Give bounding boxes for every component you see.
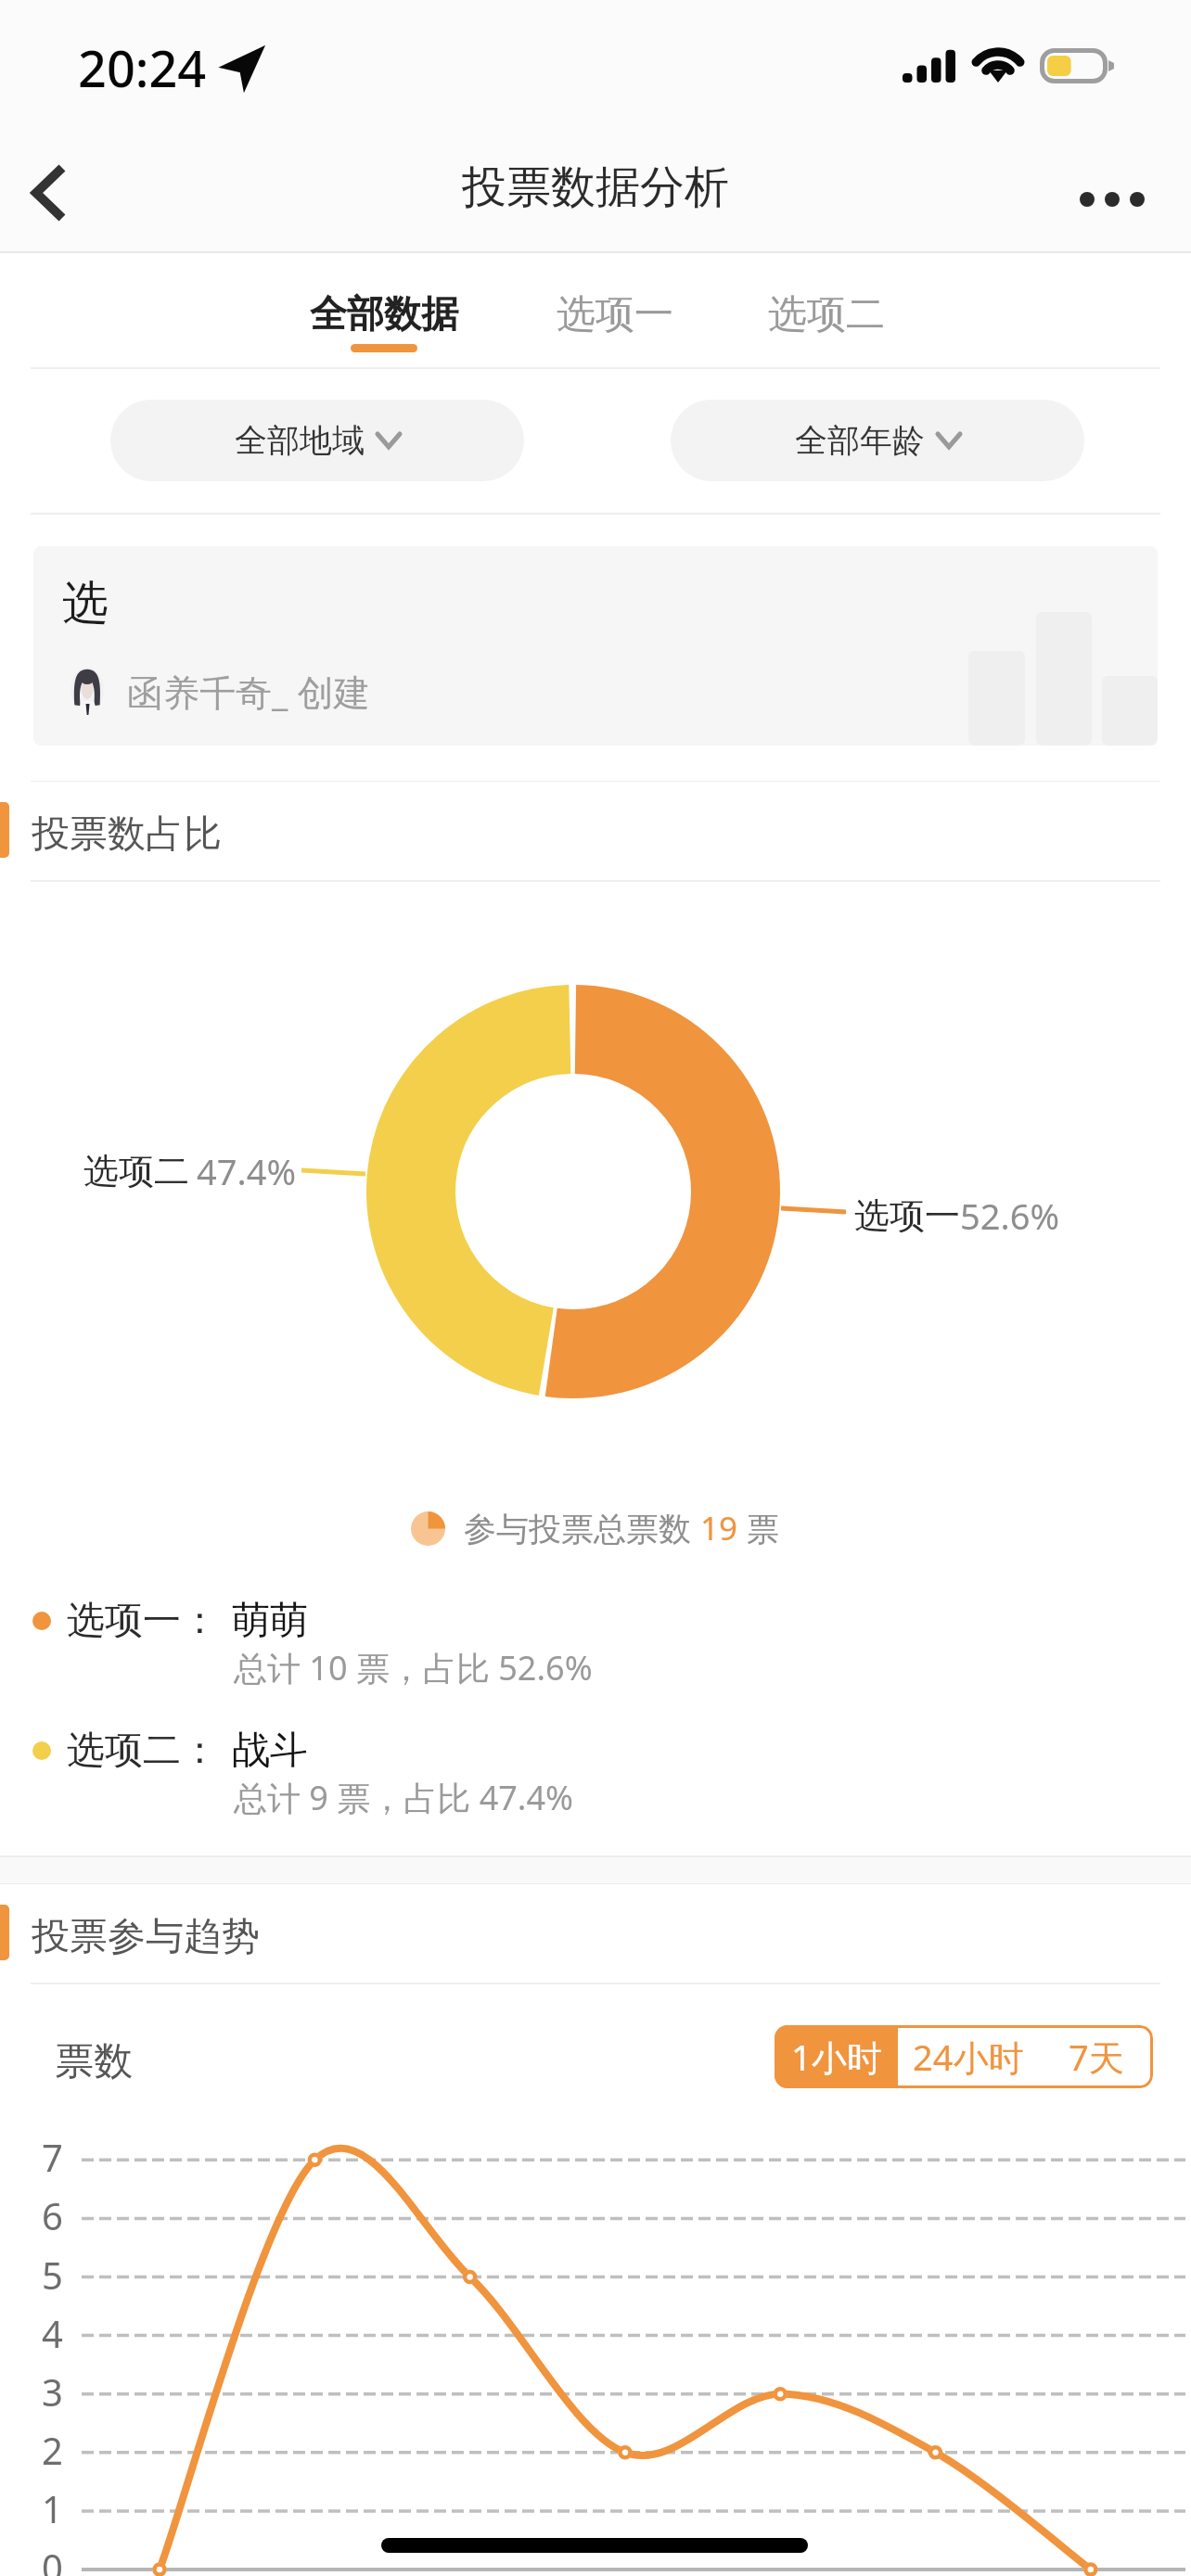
staticText: 5 [42, 2250, 63, 2300]
staticText: 选项二 [83, 1149, 189, 1193]
button[interactable]: Back [0, 121, 130, 253]
button[interactable]: 选项二 [720, 253, 933, 366]
staticText: 2 [42, 2425, 63, 2475]
staticText: 全部地域 [235, 420, 365, 461]
staticText: 47.4% [197, 1147, 296, 1195]
staticText: 选项一 [557, 290, 673, 339]
staticText: 票数 [55, 2037, 133, 2086]
staticText: 52.6% [960, 1192, 1059, 1240]
staticText: 1 [42, 2483, 63, 2533]
button[interactable]: 选 [33, 546, 1158, 746]
staticText: 投票数据分析 [462, 159, 729, 215]
staticText: 全部年龄 [795, 420, 925, 461]
staticText: 3 [42, 2366, 63, 2417]
staticText: 7天 [1069, 2033, 1124, 2081]
staticText: 票 [738, 1506, 780, 1550]
button[interactable]: More options [1052, 121, 1191, 253]
staticText: 0 [42, 2542, 63, 2576]
staticText: 选项一 [854, 1193, 960, 1238]
staticText: 战斗 [232, 1727, 308, 1775]
button[interactable]: 选项一 [508, 253, 722, 366]
staticText: 选项二 [768, 290, 885, 339]
button[interactable]: 全部地域 [110, 400, 524, 481]
staticText: 函养千奇_ 创建 [127, 667, 370, 716]
staticText: 全部数据 [310, 290, 458, 337]
button[interactable]: 7天 [1039, 2025, 1153, 2088]
staticText: 总计 10 票，占比 52.6% [234, 1645, 593, 1690]
staticText: 1小时 [791, 2033, 882, 2081]
staticText: 选 [62, 574, 109, 632]
button[interactable]: 1小时 [775, 2025, 898, 2088]
staticText: 选项一： [67, 1597, 219, 1645]
staticText: 24小时 [913, 2033, 1024, 2081]
staticText: 选项二： [67, 1727, 219, 1775]
staticText: 总计 9 票，占比 47.4% [234, 1775, 574, 1820]
staticText: 投票数占比 [32, 810, 222, 859]
staticText: 7 [42, 2132, 63, 2182]
staticText: 投票参与趋势 [32, 1913, 260, 1961]
button[interactable]: 24小时 [898, 2025, 1039, 2088]
staticText: 20:24 [78, 33, 207, 102]
button[interactable]: 全部数据 [277, 253, 491, 366]
staticText: 6 [42, 2190, 63, 2240]
staticText: 参与投票总票数 [464, 1506, 700, 1550]
staticText: 4 [42, 2308, 63, 2358]
button[interactable]: 全部年龄 [671, 400, 1084, 481]
staticText: 萌萌 [232, 1597, 308, 1645]
staticText: 19 [700, 1506, 738, 1550]
